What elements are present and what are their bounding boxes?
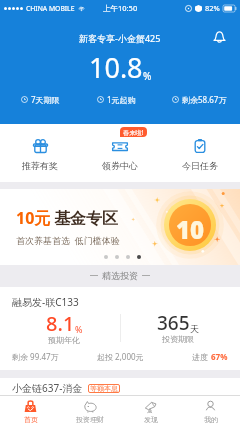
- staticText: 365: [157, 310, 190, 336]
- staticText: 发现: [144, 415, 158, 424]
- button[interactable]: 首页: [0, 396, 60, 427]
- staticText: 精选投资: [102, 270, 138, 281]
- staticText: 67%: [211, 351, 228, 362]
- button[interactable]: 今日任务: [160, 124, 240, 182]
- staticText: 进度: [192, 351, 211, 362]
- staticText: 等额本息: [90, 384, 118, 393]
- staticText: 首页: [24, 415, 38, 424]
- staticText: 融易发-联C133: [12, 295, 79, 309]
- staticText: 起投 2,000元: [97, 351, 144, 362]
- staticText: 10: [176, 213, 205, 246]
- staticText: %: [75, 323, 83, 335]
- staticText: 投资理财: [76, 415, 104, 424]
- staticText: 领券中心: [102, 160, 138, 171]
- staticText: %: [143, 69, 152, 83]
- button[interactable]: 投资理财: [60, 396, 120, 427]
- staticText: 1元起购: [107, 94, 136, 105]
- staticText: 10.8: [89, 49, 143, 86]
- staticText: 投资期限: [162, 334, 194, 344]
- staticText: 春来啦!: [123, 128, 144, 136]
- staticText: 剩余 99.47万: [12, 351, 59, 362]
- staticText: 天: [190, 323, 199, 334]
- staticText: 8.1: [46, 310, 75, 337]
- staticText: 首次养基首选 低门槛体验: [16, 234, 120, 246]
- staticText: 我的: [204, 415, 218, 424]
- button[interactable]: 我的: [180, 396, 240, 427]
- staticText: 基金专区: [54, 209, 118, 229]
- button[interactable]: Notifications: [208, 25, 230, 47]
- staticText: CHINA MOBILE: [26, 4, 75, 13]
- staticText: 10元: [16, 207, 51, 229]
- staticText: 今日任务: [182, 160, 218, 171]
- staticText: 上午10:50: [103, 3, 138, 13]
- staticText: 剩余58.67万: [182, 94, 227, 105]
- staticText: 新客专享-小金蟹425: [79, 32, 161, 44]
- staticText: 预期年化: [48, 335, 80, 345]
- button[interactable]: 领券中心: [80, 124, 160, 182]
- staticText: 7天期限: [31, 94, 60, 105]
- staticText: 82%: [205, 3, 220, 13]
- button[interactable]: 发现: [120, 396, 180, 427]
- button[interactable]: 融易发-联C133: [0, 287, 240, 370]
- button[interactable]: 10: [0, 189, 240, 265]
- staticText: 小金链637-消金: [12, 381, 83, 395]
- staticText: 推荐有奖: [22, 160, 58, 171]
- button[interactable]: 推荐有奖: [0, 124, 80, 182]
